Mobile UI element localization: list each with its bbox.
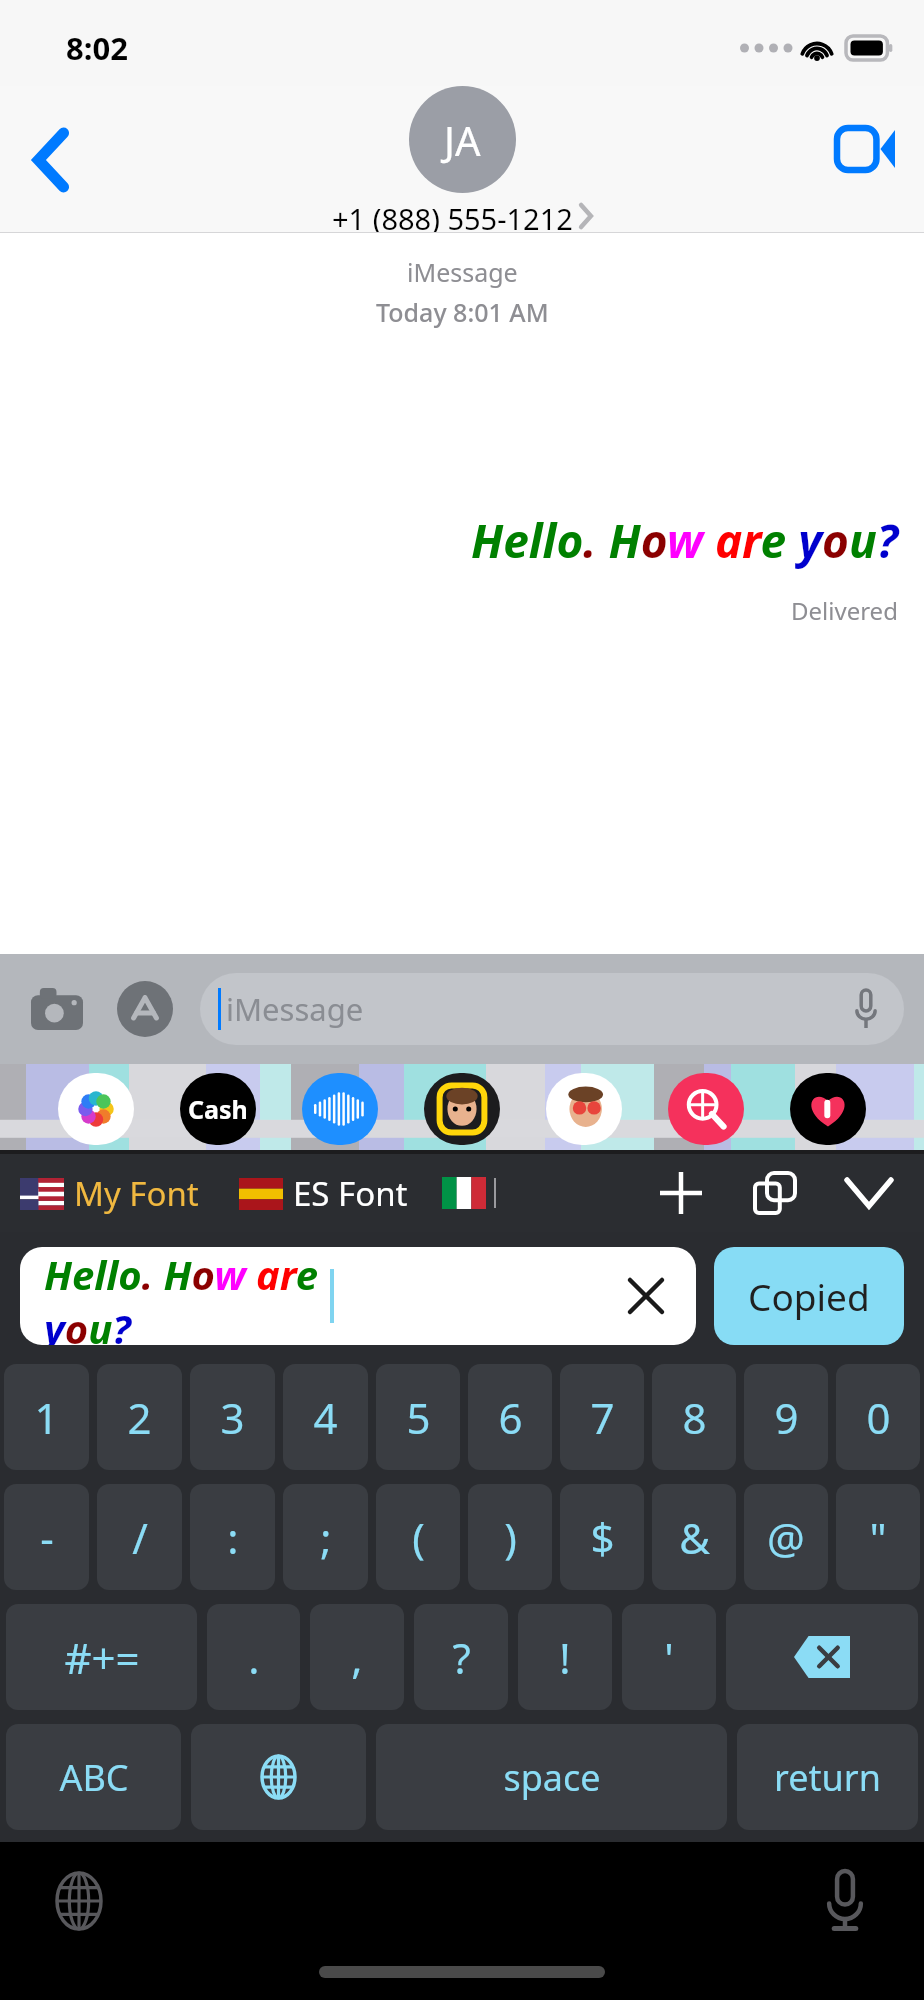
- button[interactable]: App 4: [546, 1073, 622, 1145]
- staticText: return: [774, 1753, 881, 1802]
- staticText: Today 8:01 AM: [376, 295, 549, 329]
- staticText: 1: [34, 1389, 59, 1446]
- button[interactable]: ES Font: [239, 1171, 408, 1216]
- button[interactable]: 6: [468, 1364, 552, 1470]
- button[interactable]: (: [376, 1484, 460, 1590]
- button[interactable]: 9: [744, 1364, 828, 1470]
- button[interactable]: App 0: [58, 1073, 134, 1145]
- button[interactable]: Italian font: [442, 1177, 486, 1209]
- button[interactable]: Collapse keyboard: [834, 1158, 904, 1228]
- button[interactable]: iMessage: [200, 973, 904, 1045]
- button[interactable]: Apps: [108, 972, 182, 1046]
- button[interactable]: Backspace: [726, 1604, 918, 1710]
- button[interactable]: Copy: [740, 1158, 810, 1228]
- button[interactable]: ): [468, 1484, 552, 1590]
- button[interactable]: @: [744, 1484, 828, 1590]
- button[interactable]: Add font: [646, 1158, 716, 1228]
- staticText: +1 (888) 555-1212: [332, 199, 573, 233]
- staticText: 8:02: [66, 27, 128, 69]
- staticText: iMessage: [407, 255, 518, 289]
- button[interactable]: &: [652, 1484, 736, 1590]
- staticText: @: [767, 1509, 805, 1566]
- staticText: space: [503, 1753, 601, 1802]
- staticText: Cash: [188, 1092, 248, 1126]
- button[interactable]: /: [97, 1484, 182, 1590]
- button[interactable]: ': [622, 1604, 716, 1710]
- button[interactable]: Dictation: [800, 1856, 890, 1946]
- button[interactable]: space: [376, 1724, 727, 1830]
- button[interactable]: 3: [190, 1364, 275, 1470]
- button[interactable]: 4: [283, 1364, 368, 1470]
- button[interactable]: Back: [14, 122, 90, 198]
- button[interactable]: ": [836, 1484, 920, 1590]
- staticText: ;: [320, 1509, 332, 1566]
- staticText: 4: [313, 1389, 338, 1446]
- staticText: 7: [590, 1389, 615, 1446]
- staticText: My Font: [74, 1171, 199, 1216]
- staticText: $: [590, 1509, 615, 1566]
- button[interactable]: Switch keyboard: [34, 1856, 124, 1946]
- button[interactable]: 7: [560, 1364, 644, 1470]
- button[interactable]: App 2: [302, 1073, 378, 1145]
- staticText: Copied: [748, 1271, 870, 1321]
- button[interactable]: ;: [283, 1484, 368, 1590]
- button[interactable]: Copied: [714, 1247, 904, 1345]
- staticText: 5: [406, 1389, 431, 1446]
- button[interactable]: .: [207, 1604, 300, 1710]
- staticText: ES Font: [293, 1171, 408, 1216]
- staticText: :: [227, 1509, 239, 1566]
- button[interactable]: 2: [97, 1364, 182, 1470]
- staticText: #+=: [64, 1629, 140, 1686]
- button[interactable]: App 3: [424, 1073, 500, 1145]
- staticText: JA: [444, 113, 481, 167]
- button[interactable]: !: [518, 1604, 612, 1710]
- staticText: iMessage: [226, 988, 364, 1030]
- button[interactable]: FaceTime video call: [826, 109, 906, 189]
- staticText: ): [504, 1509, 517, 1566]
- staticText: 8: [682, 1389, 707, 1446]
- button[interactable]: Camera: [20, 972, 94, 1046]
- button[interactable]: 5: [376, 1364, 460, 1470]
- staticText: ,: [351, 1629, 363, 1686]
- staticText: ABC: [59, 1753, 129, 1802]
- staticText: Delivered: [791, 594, 898, 627]
- staticText: ?: [452, 1629, 471, 1686]
- staticText: ': [664, 1629, 674, 1686]
- staticText: ": [869, 1509, 887, 1566]
- staticText: 3: [220, 1389, 245, 1446]
- button[interactable]: Hello. How are you?: [20, 1247, 696, 1345]
- button[interactable]: App 6: [790, 1073, 866, 1145]
- staticText: -: [40, 1509, 54, 1566]
- staticText: !: [559, 1629, 571, 1686]
- button[interactable]: 1: [4, 1364, 89, 1470]
- staticText: 2: [127, 1389, 152, 1446]
- button[interactable]: :: [190, 1484, 275, 1590]
- button[interactable]: Next keyboard: [191, 1724, 366, 1830]
- button[interactable]: Clear text: [620, 1270, 672, 1322]
- staticText: (: [412, 1509, 425, 1566]
- button[interactable]: App 5: [668, 1073, 744, 1145]
- button[interactable]: 0: [836, 1364, 920, 1470]
- button[interactable]: JA: [409, 86, 516, 193]
- button[interactable]: -: [4, 1484, 89, 1590]
- button[interactable]: App 1: [180, 1073, 256, 1145]
- button[interactable]: ,: [310, 1604, 404, 1710]
- button[interactable]: $: [560, 1484, 644, 1590]
- button[interactable]: 8: [652, 1364, 736, 1470]
- button[interactable]: My Font: [20, 1171, 199, 1216]
- button[interactable]: ABC: [6, 1724, 181, 1830]
- staticText: 9: [774, 1389, 799, 1446]
- button[interactable]: return: [737, 1724, 918, 1830]
- button[interactable]: ?: [414, 1604, 508, 1710]
- staticText: 0: [866, 1389, 891, 1446]
- staticText: /: [132, 1509, 148, 1566]
- staticText: &: [679, 1509, 710, 1566]
- staticText: Hello. How are you?: [471, 509, 898, 572]
- staticText: 6: [498, 1389, 523, 1446]
- staticText: .: [248, 1629, 260, 1686]
- staticText: Hello. How are you?: [44, 1247, 330, 1345]
- button[interactable]: #+=: [6, 1604, 197, 1710]
